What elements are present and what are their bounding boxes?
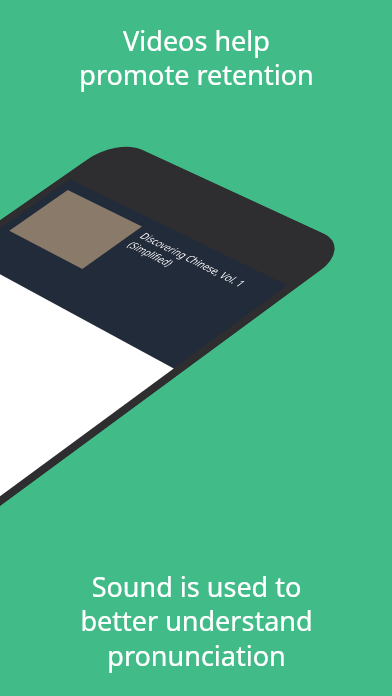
staticText: Sound is used to better understand pronu… — [80, 568, 313, 674]
staticText: Videos help promote retention — [79, 22, 314, 93]
staticText: Discovering Chinese, Vol. 1 (Simplified) — [124, 230, 250, 299]
